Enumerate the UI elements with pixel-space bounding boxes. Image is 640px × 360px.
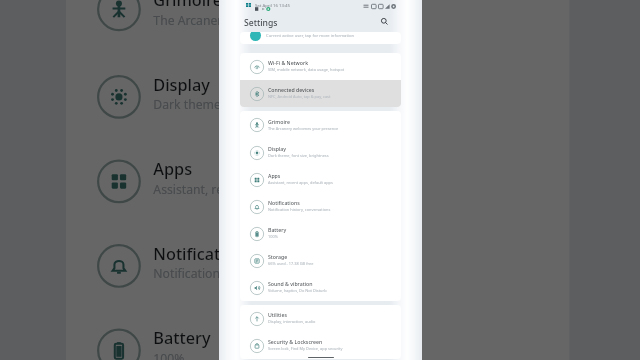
button[interactable]: Notifications <box>66 222 570 307</box>
button[interactable]: Battery <box>240 220 401 247</box>
staticText: 100% <box>268 234 278 239</box>
staticText: Volume, haptics, Do Not Disturb <box>268 288 327 293</box>
button[interactable]: Grimoire <box>240 111 401 139</box>
staticText: The Arcanery welcomes your presence <box>268 126 339 131</box>
button[interactable]: Wi-Fi & Network <box>240 53 401 80</box>
button[interactable]: Notifications <box>240 193 401 220</box>
staticText: Battery <box>268 226 287 233</box>
staticText: Screen lock, Find My Device, app securit… <box>268 346 343 351</box>
staticText: Battery <box>153 325 213 347</box>
staticText: The Arcanery welcomes your presence <box>153 12 376 28</box>
button[interactable]: Connected devices <box>240 80 401 107</box>
staticText: 100% <box>153 350 185 360</box>
button[interactable]: Battery <box>66 307 570 360</box>
staticText: Display, interaction, audio <box>268 319 316 324</box>
staticText: Sat April 16 13:45 <box>255 2 290 8</box>
staticText: Display <box>153 72 213 94</box>
staticText: Dark theme, font size, brightness <box>268 153 329 158</box>
staticText: NFC, Android Auto, tap & pay, cast <box>268 94 331 99</box>
staticText: Apps <box>153 156 194 178</box>
staticText: Notifications <box>153 241 254 263</box>
staticText: Display <box>268 145 287 152</box>
staticText: Notification history, conversations <box>153 266 351 281</box>
staticText: Notifications <box>268 199 300 206</box>
staticText: Wi-Fi & Network <box>268 59 309 66</box>
staticText: Utilities <box>268 311 287 318</box>
staticText: Storage <box>268 253 288 260</box>
staticText: Current active user, tap for more inform… <box>266 33 355 39</box>
button[interactable]: Security & Lockscreen <box>240 332 401 359</box>
staticText: SIM, mobile network, data usage, hotspot <box>268 67 345 72</box>
button[interactable]: Storage <box>240 247 401 274</box>
button[interactable]: Display <box>66 53 570 138</box>
staticText: Notification history, conversations <box>268 207 331 212</box>
staticText: Grimoire <box>268 118 290 125</box>
button[interactable]: Current active user, tap for more inform… <box>240 32 401 44</box>
button[interactable]: Apps <box>66 138 570 222</box>
staticText: Connected devices <box>268 86 315 93</box>
staticText: 66% used - 17.38 GB free <box>268 261 314 266</box>
button[interactable]: Display <box>240 139 401 166</box>
staticText: Apps <box>268 172 281 179</box>
staticText: Grimoire <box>153 0 222 9</box>
button[interactable]: Apps <box>240 166 401 193</box>
button[interactable]: Search <box>378 15 391 28</box>
staticText: Security & Lockscreen <box>268 338 323 345</box>
staticText: Assistant, recent apps, default apps <box>153 181 357 197</box>
staticText: Dark theme, font size, brightness <box>153 97 344 112</box>
staticText: Sound & vibration <box>268 280 313 287</box>
staticText: Settings <box>244 17 278 29</box>
button[interactable]: Utilities <box>240 305 401 332</box>
button[interactable]: Grimoire <box>66 0 570 53</box>
button[interactable]: Sound & vibration <box>240 274 401 301</box>
staticText: Assistant, recent apps, default apps <box>268 180 333 185</box>
